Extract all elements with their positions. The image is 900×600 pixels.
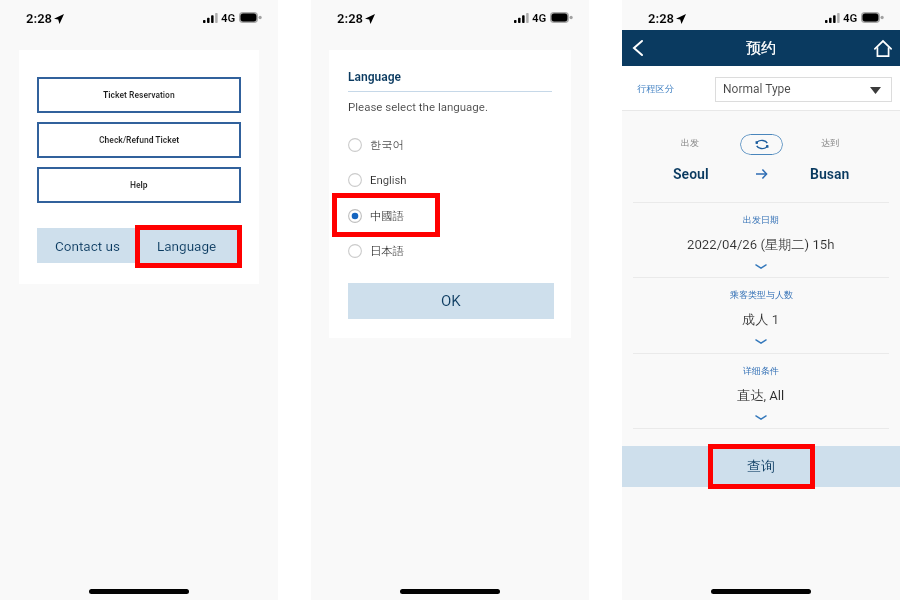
button[interactable]: 乘客类型与人数 bbox=[622, 277, 900, 352]
staticText: 한국어 bbox=[370, 138, 404, 152]
staticText: OK bbox=[441, 292, 461, 310]
staticText: 2022/04/26 (星期二) 15h bbox=[687, 236, 835, 253]
button[interactable]: 中國語 bbox=[348, 205, 554, 227]
staticText: Language bbox=[348, 70, 402, 84]
staticText: 直达, All bbox=[737, 387, 785, 404]
button[interactable]: Swap departure and arrival bbox=[740, 134, 783, 155]
staticText: 行程区分 bbox=[637, 83, 675, 95]
button[interactable]: Check/Refund Ticket bbox=[37, 122, 241, 158]
staticText: 2:28 bbox=[337, 11, 364, 26]
staticText: 出发日期 bbox=[743, 214, 779, 225]
button[interactable]: 详细条件 bbox=[622, 353, 900, 428]
button[interactable]: Help bbox=[37, 167, 241, 203]
button[interactable]: 한국어 bbox=[348, 134, 554, 156]
staticText: 日本語 bbox=[370, 244, 404, 258]
button[interactable]: Contact us bbox=[37, 228, 137, 263]
button[interactable]: Normal Type bbox=[715, 77, 892, 102]
staticText: Check/Refund Ticket bbox=[99, 135, 180, 145]
staticText: Language bbox=[157, 238, 217, 254]
button[interactable]: 出发日期 bbox=[622, 202, 900, 277]
staticText: 成人 1 bbox=[742, 311, 780, 328]
button[interactable]: Home bbox=[870, 30, 896, 66]
button[interactable]: 查询 bbox=[622, 446, 900, 487]
staticText: 中國語 bbox=[370, 209, 404, 223]
staticText: 4G bbox=[532, 11, 547, 24]
staticText: Help bbox=[130, 180, 148, 190]
staticText: English bbox=[370, 174, 407, 187]
staticText: Busan bbox=[810, 166, 850, 182]
button[interactable]: Language bbox=[137, 228, 237, 263]
staticText: Contact us bbox=[55, 238, 120, 254]
staticText: 乘客类型与人数 bbox=[730, 289, 793, 300]
staticText: 详细条件 bbox=[743, 365, 779, 376]
button[interactable]: 日本語 bbox=[348, 240, 554, 262]
button[interactable]: English bbox=[348, 169, 554, 191]
staticText: 达到 bbox=[821, 137, 839, 148]
staticText: Ticket Reservation bbox=[103, 90, 175, 100]
button[interactable]: Ticket Reservation bbox=[37, 77, 241, 113]
staticText: 出发 bbox=[681, 137, 699, 148]
staticText: 4G bbox=[221, 11, 236, 24]
staticText: Normal Type bbox=[723, 82, 791, 96]
staticText: 查询 bbox=[747, 458, 775, 476]
staticText: 预约 bbox=[746, 39, 776, 58]
staticText: 2:28 bbox=[26, 11, 53, 26]
button[interactable]: Back bbox=[625, 30, 651, 66]
button[interactable]: OK bbox=[348, 283, 554, 319]
staticText: Please select the language. bbox=[348, 100, 488, 113]
staticText: 2:28 bbox=[648, 11, 675, 26]
staticText: Seoul bbox=[673, 166, 709, 182]
staticText: 4G bbox=[843, 11, 858, 24]
